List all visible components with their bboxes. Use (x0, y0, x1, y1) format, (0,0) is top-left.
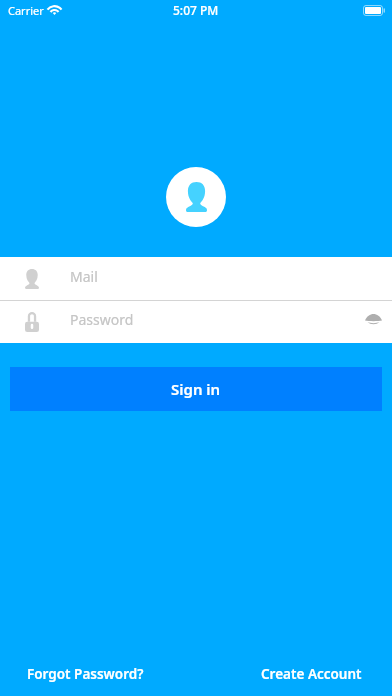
button[interactable]: Show password (349, 301, 392, 343)
staticText: Password (70, 310, 134, 329)
staticText: 5:07 PM (173, 2, 219, 18)
staticText: Carrier (8, 3, 44, 18)
staticText: Mail (70, 267, 98, 286)
staticText: Forgot Password? (27, 665, 144, 683)
button[interactable]: Forgot Password? (17, 657, 154, 691)
button[interactable]: Mail (0, 257, 392, 300)
staticText: Create Account (261, 665, 362, 683)
staticText: Sign in (171, 379, 221, 399)
button[interactable]: Password (0, 301, 392, 343)
button[interactable]: Sign in (10, 367, 382, 411)
button[interactable]: Create Account (251, 657, 372, 691)
